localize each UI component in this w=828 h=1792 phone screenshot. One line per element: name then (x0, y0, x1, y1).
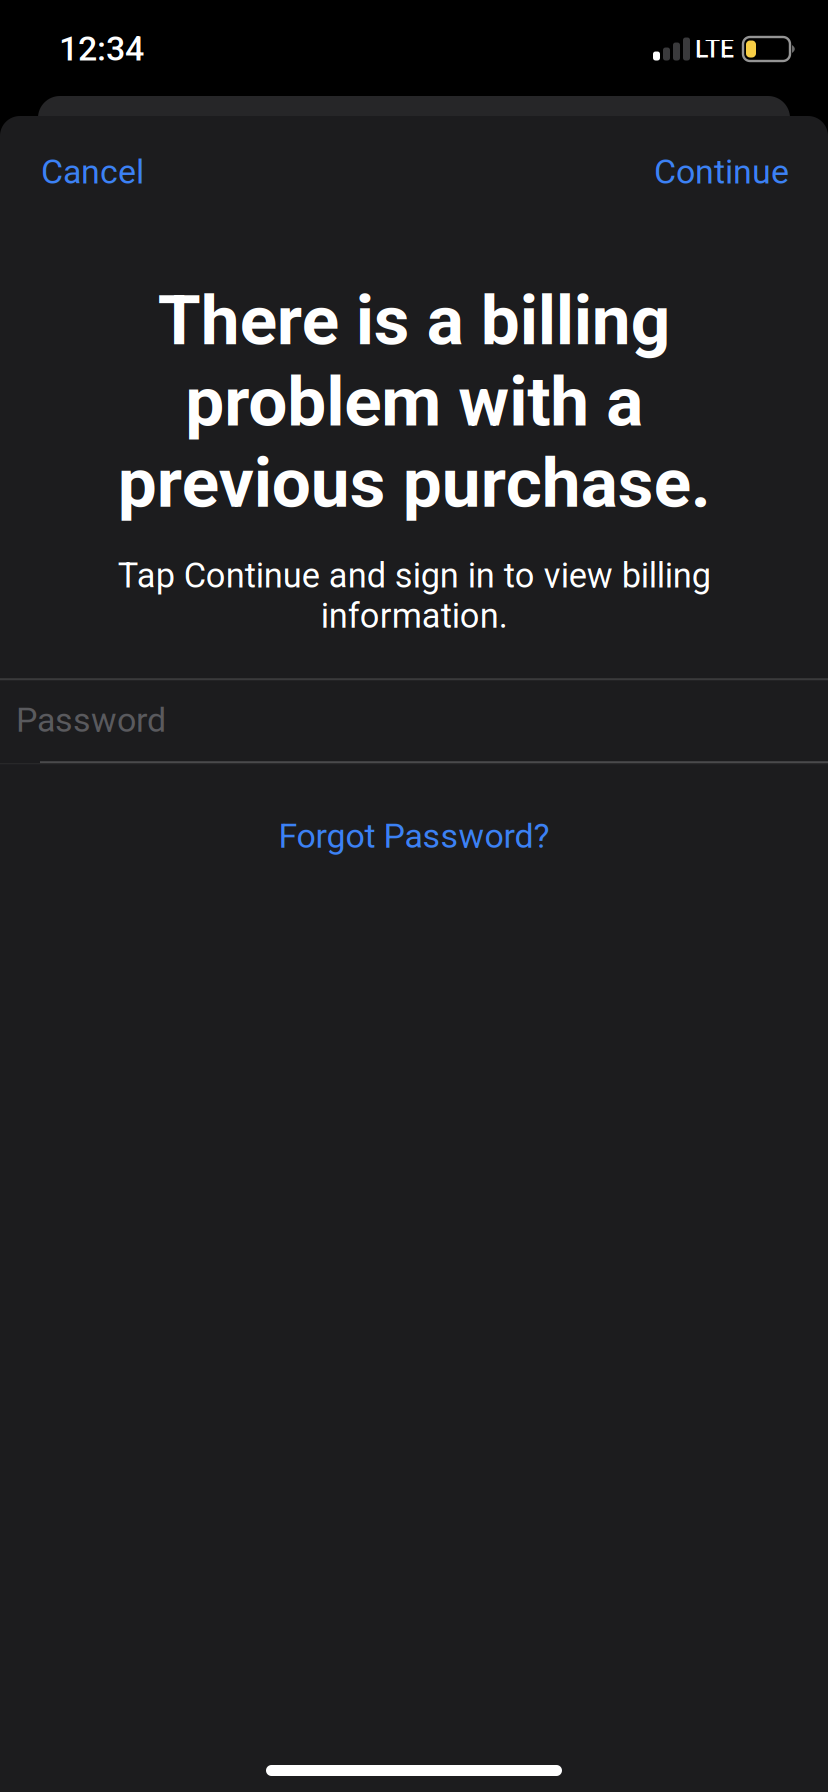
button[interactable]: Password (0, 678, 828, 764)
staticText: 12:34 (59, 29, 144, 69)
staticText: Cancel (41, 152, 144, 192)
button[interactable]: Cancel (0, 140, 164, 204)
staticText: There is a billing problem with a previo… (117, 280, 710, 523)
staticText: Tap Continue and sign in to view billing… (117, 556, 710, 636)
staticText: Continue (654, 152, 789, 192)
staticText: Forgot Password? (278, 816, 549, 856)
staticText: Password (16, 700, 166, 740)
button[interactable]: Forgot Password? (248, 802, 579, 870)
button[interactable]: Continue (634, 140, 828, 204)
staticText: LTE (695, 34, 734, 64)
